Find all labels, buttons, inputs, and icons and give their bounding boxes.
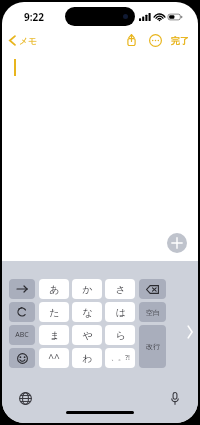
staticText: は — [115, 306, 126, 319]
button[interactable]: わ — [72, 348, 102, 368]
button[interactable]: More options — [147, 32, 163, 48]
button[interactable]: な — [72, 302, 102, 322]
staticText: ら — [115, 329, 126, 342]
staticText: か — [82, 283, 93, 296]
button[interactable]: ら — [105, 325, 135, 345]
staticText: メモ — [19, 35, 38, 46]
staticText: 空白 — [146, 308, 160, 317]
button[interactable]: Key — [9, 348, 35, 368]
button[interactable]: や — [72, 325, 102, 345]
staticText: ^^ — [48, 351, 60, 365]
button[interactable]: Key — [139, 302, 166, 322]
button[interactable]: さ — [105, 279, 135, 299]
staticText: あ — [49, 283, 60, 296]
staticText: わ — [82, 352, 93, 365]
button[interactable]: Share — [122, 31, 140, 49]
button[interactable]: Dictation — [166, 389, 184, 407]
button[interactable]: Key — [9, 279, 35, 299]
button[interactable]: ま — [39, 325, 69, 345]
staticText: や — [82, 329, 93, 342]
staticText: さ — [115, 283, 126, 296]
staticText: 9:22 — [24, 10, 44, 24]
staticText: 完了 — [171, 35, 189, 46]
button[interactable]: は — [105, 302, 135, 322]
button[interactable]: Key — [139, 325, 166, 368]
staticText: 改行 — [146, 342, 160, 351]
button[interactable]: か — [72, 279, 102, 299]
button[interactable]: Switch keyboard — [16, 389, 34, 407]
staticText: な — [82, 306, 93, 319]
staticText: た — [49, 306, 60, 319]
button[interactable]: Key — [9, 302, 35, 322]
button[interactable]: あ — [39, 279, 69, 299]
staticText: 、。?! — [111, 353, 130, 363]
button[interactable]: Expand — [185, 321, 195, 343]
button[interactable]: Add attachment — [167, 233, 187, 253]
button[interactable]: 、。?! — [105, 348, 135, 368]
button[interactable]: た — [39, 302, 69, 322]
button[interactable]: Key — [139, 279, 166, 299]
button[interactable]: ^^ — [39, 348, 69, 368]
button[interactable]: メモ — [7, 33, 40, 48]
staticText: ABC — [15, 330, 29, 340]
button[interactable]: Key — [9, 325, 35, 345]
staticText: ま — [49, 329, 60, 342]
button[interactable]: 完了 — [168, 33, 192, 48]
